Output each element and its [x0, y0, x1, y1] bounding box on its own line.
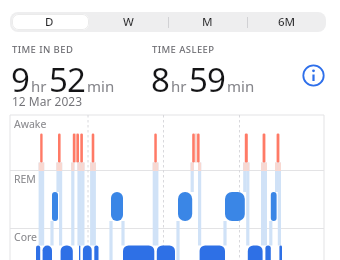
staticText: TIME ASLEEP [152, 43, 215, 56]
button[interactable]: D [10, 12, 89, 32]
staticText: Core [14, 230, 38, 244]
staticText: M [202, 14, 213, 30]
staticText: min [87, 76, 115, 96]
staticText: 52 [49, 57, 86, 102]
staticText: 59 [189, 57, 226, 102]
staticText: 12 Mar 2023 [12, 93, 82, 109]
button[interactable]: 6M [247, 12, 326, 32]
button[interactable]: W [89, 12, 168, 32]
staticText: min [227, 76, 255, 96]
staticText: 6M [278, 14, 296, 30]
staticText: REM [14, 172, 36, 186]
staticText: 9 [11, 57, 30, 102]
staticText: hr [31, 76, 47, 96]
button[interactable]: M [168, 12, 247, 32]
staticText: D [45, 14, 54, 30]
staticText: 8 [151, 57, 170, 102]
staticText: TIME IN BED [12, 43, 74, 56]
button[interactable] [301, 63, 326, 88]
staticText: Awake [14, 117, 47, 131]
staticText: hr [171, 76, 187, 96]
staticText: W [123, 14, 134, 30]
